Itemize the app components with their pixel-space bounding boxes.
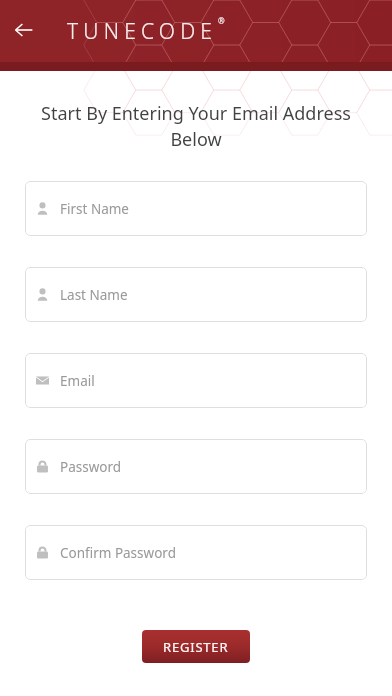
staticText: ® bbox=[218, 15, 225, 26]
button[interactable]: Last Name bbox=[25, 267, 367, 322]
staticText: Last Name bbox=[60, 286, 128, 304]
button[interactable]: Confirm Password bbox=[25, 525, 367, 580]
button[interactable]: Back bbox=[10, 16, 38, 44]
button[interactable]: First Name bbox=[25, 181, 367, 236]
staticText: TUNECODE bbox=[67, 17, 218, 46]
staticText: Confirm Password bbox=[60, 544, 176, 562]
staticText: REGISTER bbox=[163, 638, 229, 656]
staticText: Email bbox=[60, 372, 95, 390]
button[interactable]: Password bbox=[25, 439, 367, 494]
staticText: Start By Entering Your Email Address Bel… bbox=[22, 101, 370, 152]
button[interactable]: REGISTER bbox=[142, 630, 250, 663]
staticText: Password bbox=[60, 458, 122, 476]
staticText: First Name bbox=[60, 200, 129, 218]
button[interactable]: Email bbox=[25, 353, 367, 408]
